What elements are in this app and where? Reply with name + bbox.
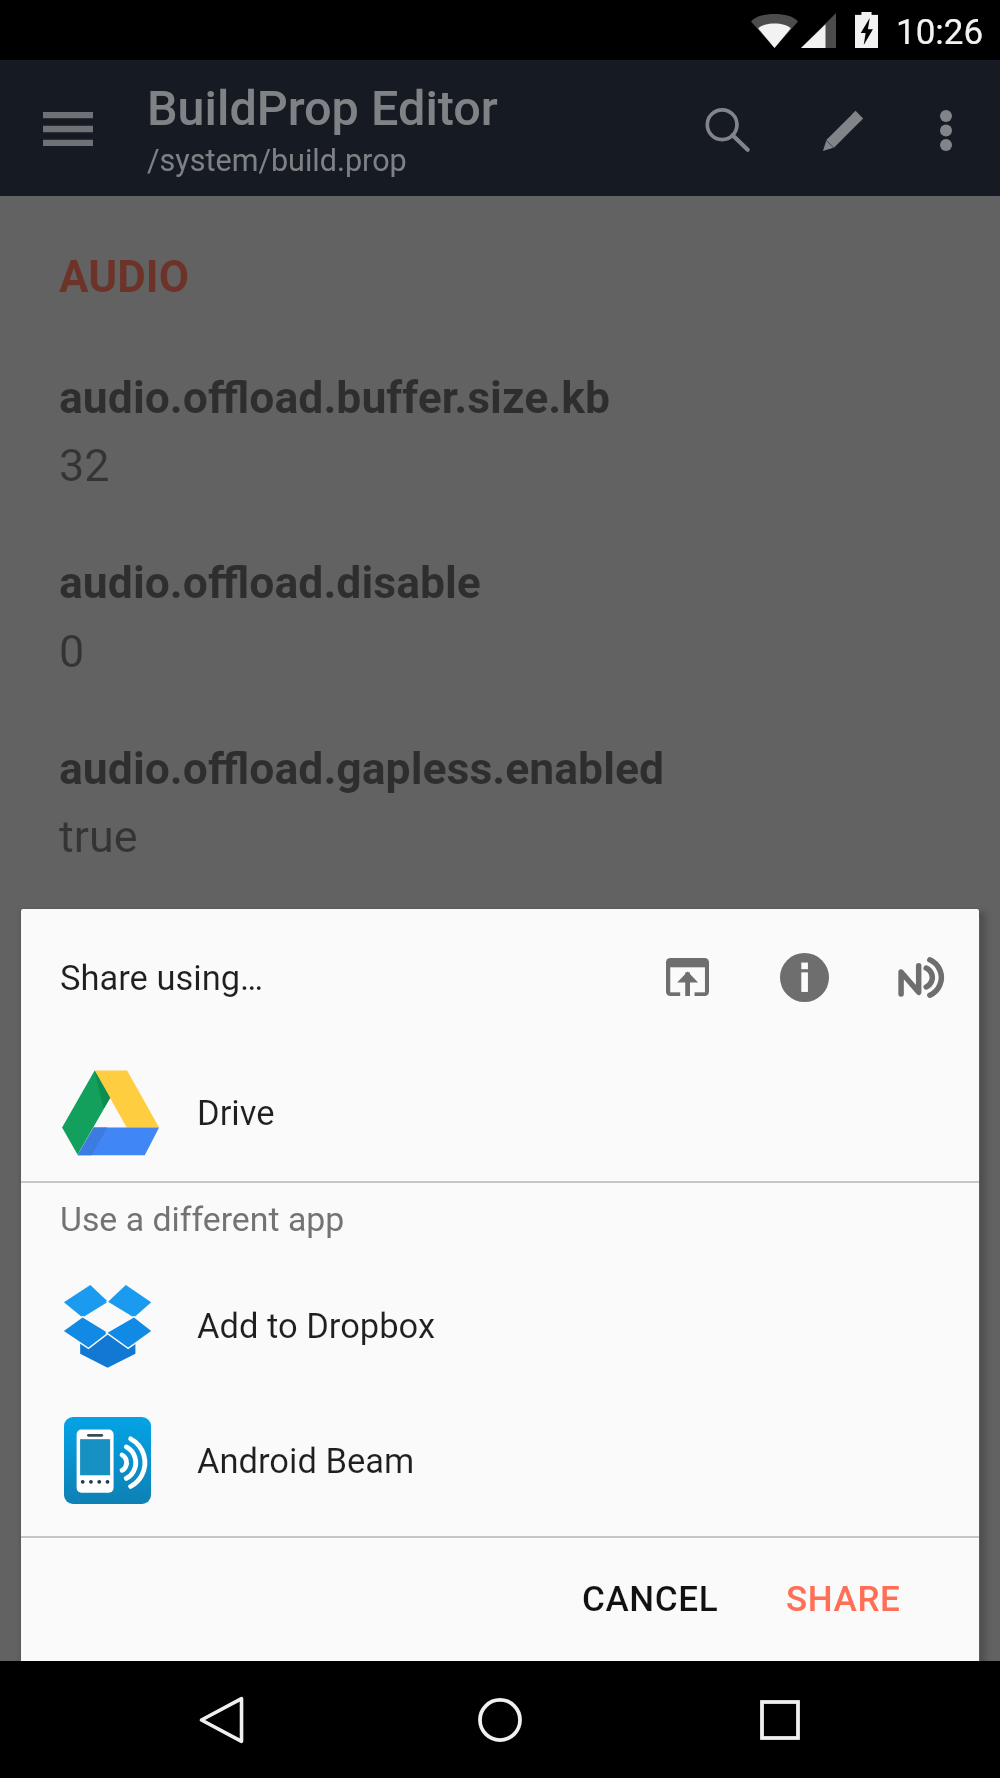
button[interactable]: Home xyxy=(445,1661,555,1778)
staticText: /system/build.prop xyxy=(147,143,407,179)
button[interactable]: Android Beam xyxy=(21,1404,979,1539)
button[interactable]: Add to Dropbox xyxy=(21,1269,979,1404)
staticText: true xyxy=(59,810,138,863)
staticText: 10:26 xyxy=(896,12,984,53)
button[interactable]: Search xyxy=(679,82,775,178)
button[interactable]: Recent apps xyxy=(725,1661,835,1778)
button[interactable]: Android Beam xyxy=(870,927,970,1027)
staticText: 32 xyxy=(59,439,110,492)
staticText: 0 xyxy=(59,625,85,678)
staticText: BuildProp Editor xyxy=(147,80,498,137)
staticText: Use a different app xyxy=(60,1200,345,1240)
staticText: AUDIO xyxy=(59,251,190,303)
staticText: Drive xyxy=(197,1093,275,1133)
button[interactable]: SHARE xyxy=(766,1551,920,1647)
button[interactable]: Open navigation drawer xyxy=(23,89,113,169)
button[interactable]: CANCEL xyxy=(562,1551,738,1647)
button[interactable]: More options xyxy=(898,82,994,178)
staticText: Add to Dropbox xyxy=(197,1306,436,1346)
staticText: CANCEL xyxy=(582,1579,719,1620)
button[interactable]: Details xyxy=(754,927,854,1027)
button[interactable]: Edit xyxy=(796,81,892,177)
staticText: Share using… xyxy=(60,958,264,998)
staticText: audio.offload.disable xyxy=(59,557,481,609)
button[interactable]: Back xyxy=(166,1661,276,1778)
staticText: audio.offload.gapless.enabled xyxy=(59,743,665,795)
button[interactable]: Send to device xyxy=(637,927,737,1027)
staticText: SHARE xyxy=(786,1579,901,1620)
button[interactable]: Drive xyxy=(21,1056,979,1174)
button[interactable]: Dismiss share sheet xyxy=(0,0,1000,1778)
staticText: audio.offload.buffer.size.kb xyxy=(59,372,611,424)
staticText: Android Beam xyxy=(197,1441,415,1481)
